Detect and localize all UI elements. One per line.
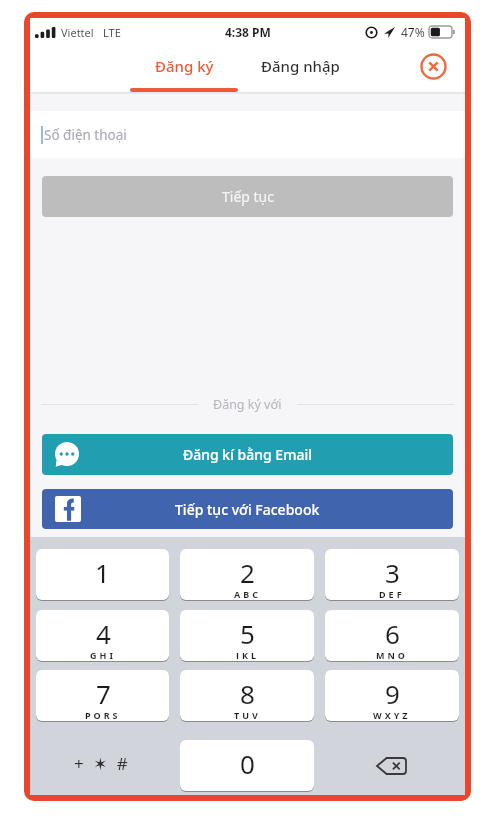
button[interactable]: 9: [325, 670, 459, 721]
staticText: 1: [95, 555, 110, 590]
staticText: + ✶ #: [74, 752, 131, 775]
staticText: Tiếp tục với Facebook: [175, 500, 320, 519]
staticText: GHI: [90, 649, 116, 659]
staticText: Số điện thoại: [44, 126, 127, 144]
staticText: Đăng ký: [155, 56, 214, 76]
staticText: 3: [385, 555, 400, 590]
staticText: 0: [240, 746, 255, 781]
button[interactable]: 8: [180, 670, 314, 721]
staticText: 9: [385, 676, 400, 711]
button[interactable]: 1: [36, 549, 169, 600]
button[interactable]: 6: [325, 610, 459, 661]
staticText: Đăng ký với: [213, 396, 282, 413]
button[interactable]: 2: [180, 549, 314, 600]
staticText: DEF: [379, 588, 405, 598]
staticText: JKL: [236, 649, 259, 659]
staticText: 6: [385, 616, 400, 651]
staticText: 4:38 PM: [225, 24, 271, 40]
staticText: Viettel: [61, 25, 94, 40]
button[interactable]: 0: [180, 740, 314, 791]
button[interactable]: Đăng nhập: [246, 44, 354, 88]
staticText: Đăng kí bằng Email: [183, 445, 312, 464]
staticText: 8: [240, 676, 255, 711]
staticText: 47%: [401, 24, 425, 40]
button[interactable]: Tiếp tục: [42, 176, 453, 217]
button[interactable]: Đăng ký: [138, 44, 230, 88]
staticText: 7: [96, 676, 111, 711]
button[interactable]: Đăng kí bằng Email: [42, 434, 453, 475]
button[interactable]: Số điện thoại: [30, 111, 465, 158]
staticText: LTE: [103, 25, 121, 40]
staticText: Đăng nhập: [261, 56, 340, 76]
staticText: PQRS: [85, 709, 121, 719]
staticText: ABC: [234, 588, 261, 598]
staticText: Tiếp tục: [222, 187, 274, 206]
staticText: 4: [96, 616, 111, 651]
staticText: 2: [240, 555, 255, 590]
button[interactable]: 4: [36, 610, 169, 661]
button[interactable]: 3: [325, 549, 459, 600]
button[interactable]: [325, 740, 459, 791]
button[interactable]: Tiếp tục với Facebook: [42, 489, 453, 529]
staticText: MNO: [376, 649, 408, 659]
staticText: 5: [240, 616, 255, 651]
staticText: WXYZ: [373, 709, 411, 719]
button[interactable]: 7: [36, 670, 169, 721]
staticText: TUV: [234, 709, 261, 719]
button[interactable]: 5: [180, 610, 314, 661]
button[interactable]: [420, 53, 447, 80]
button[interactable]: + ✶ #: [36, 740, 169, 791]
